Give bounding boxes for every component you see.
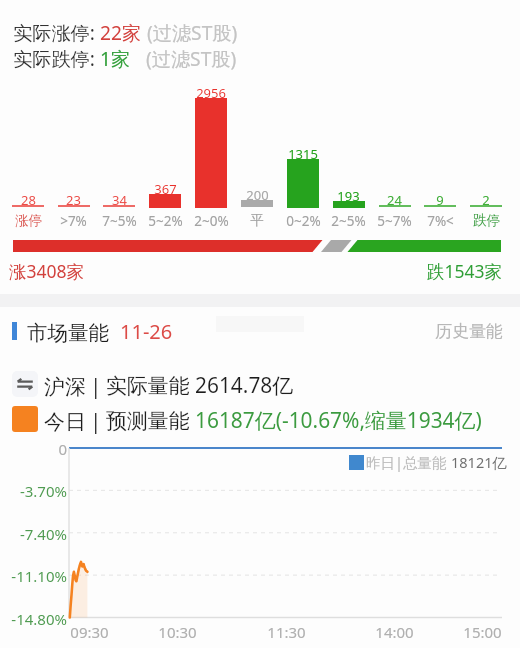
staticText: 10:30 — [158, 622, 197, 640]
staticText: 2~5% — [331, 212, 366, 230]
staticText: 22家 — [100, 19, 142, 45]
staticText: 15:00 — [463, 622, 502, 640]
staticText: 1315 — [288, 145, 318, 163]
staticText: 涨停 — [15, 212, 42, 229]
staticText: 24 — [387, 191, 402, 209]
staticText: 0 — [58, 439, 67, 457]
staticText: 跌停 — [473, 212, 500, 229]
staticText: 实际跌停: — [13, 45, 100, 71]
staticText: 5~7% — [377, 212, 412, 230]
staticText: 2614.78亿 — [195, 371, 294, 400]
staticText: 0~2% — [286, 212, 321, 230]
staticText: 16187亿(-10.67%,缩量1934亿) — [195, 406, 482, 435]
staticText: 14:00 — [375, 622, 414, 640]
staticText: 实际量能 — [106, 371, 195, 400]
staticText: 今日 — [44, 409, 86, 435]
staticText: 2956 — [196, 84, 226, 102]
staticText: 28 — [21, 191, 36, 209]
staticText: 1家 — [100, 45, 131, 71]
staticText: 涨3408家 — [9, 259, 85, 283]
staticText: 18121亿 — [451, 452, 507, 472]
staticText: 跌1543家 — [427, 259, 503, 283]
button[interactable]: 切换市场 — [12, 371, 38, 397]
staticText: 7~5% — [102, 212, 137, 230]
staticText: -14.80% — [11, 609, 67, 627]
staticText: 11:30 — [267, 622, 306, 640]
staticText: 昨日|总量能 — [366, 452, 451, 472]
staticText: -3.70% — [19, 481, 67, 499]
staticText: 11-26 — [120, 318, 173, 345]
staticText: >7% — [60, 212, 87, 230]
staticText: 预测量能 — [106, 406, 195, 435]
staticText: (过滤ST股) — [131, 45, 237, 71]
staticText: | — [90, 372, 102, 400]
staticText: | — [90, 407, 102, 435]
staticText: 367 — [154, 180, 177, 198]
staticText: 5~2% — [148, 212, 183, 230]
button[interactable]: 历史量能 — [435, 321, 503, 342]
staticText: 34 — [112, 191, 127, 209]
staticText: 7%< — [427, 212, 454, 230]
staticText: 沪深 — [44, 374, 86, 400]
staticText: 9 — [436, 191, 444, 209]
staticText: -11.10% — [11, 566, 67, 584]
staticText: 平 — [250, 212, 264, 229]
staticText: 200 — [246, 186, 269, 204]
staticText: 历史量能 — [435, 321, 503, 342]
staticText: 2 — [482, 191, 490, 209]
staticText: -7.40% — [19, 524, 67, 542]
staticText: 23 — [66, 191, 81, 209]
staticText: (过滤ST股) — [142, 19, 238, 45]
staticText: 2~0% — [194, 212, 229, 230]
staticText: 实际涨停: — [13, 19, 100, 45]
staticText: 市场量能 — [27, 320, 109, 346]
staticText: 193 — [337, 187, 360, 205]
staticText: 09:30 — [70, 622, 109, 640]
